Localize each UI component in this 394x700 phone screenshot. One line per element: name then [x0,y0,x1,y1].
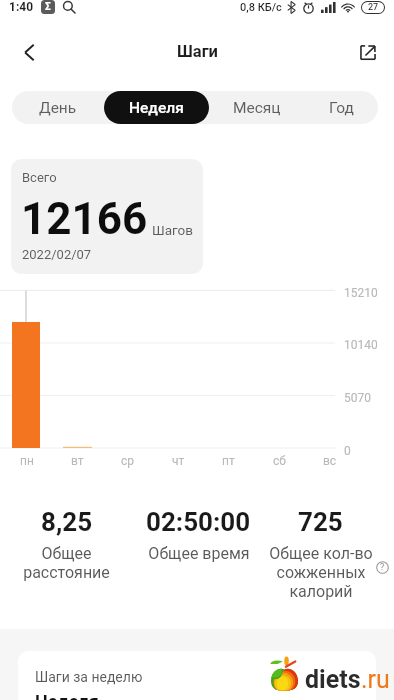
staticText: Шаги [177,42,218,61]
staticText: 12166 [21,193,148,245]
staticText: День [39,99,77,117]
button[interactable]: Back [14,37,44,67]
staticText: Шагов [152,222,194,238]
button[interactable]: Месяц [209,91,305,124]
button[interactable]: Неделя [104,91,209,124]
staticText: 1:40 [9,0,34,14]
staticText: Общее время [148,544,250,563]
button[interactable]: Шаги за неделю [18,651,376,700]
staticText: пт [222,454,235,468]
staticText: Общее расстояние [23,544,110,582]
button[interactable]: Share [353,37,383,67]
staticText: Месяц [233,99,281,117]
staticText: ср [121,454,135,468]
staticText: Год [329,99,354,117]
staticText: 10140 [344,338,378,352]
button[interactable]: День [12,91,104,124]
staticText: 8,25 [41,507,93,537]
staticText: Неделя [35,691,99,700]
staticText: Общее кол-во сожженных калорий [269,544,373,601]
staticText: 15210 [344,286,378,300]
staticText: Шаги за неделю [35,669,143,685]
staticText: 27 [368,2,379,13]
staticText: пн [20,454,34,468]
staticText: вс [323,454,337,468]
staticText: вт [71,454,84,468]
staticText: 725 [298,507,343,537]
staticText: 02:50:00 [146,507,251,537]
button[interactable]: Info about calories [376,561,389,574]
button[interactable]: Год [305,91,378,124]
staticText: Неделя [129,99,184,117]
staticText: сб [273,454,286,468]
staticText: .ru [361,665,390,694]
staticText: ? [380,562,385,573]
staticText: 0,8 КБ/c [240,1,282,14]
staticText: 5070 [344,391,371,405]
button[interactable]: Всего [11,159,203,274]
staticText: 2022/02/07 [22,247,92,262]
staticText: чт [172,454,185,468]
staticText: Σ [45,1,51,13]
staticText: diets [305,665,361,694]
staticText: 0 [344,444,351,458]
staticText: Всего [22,170,57,185]
